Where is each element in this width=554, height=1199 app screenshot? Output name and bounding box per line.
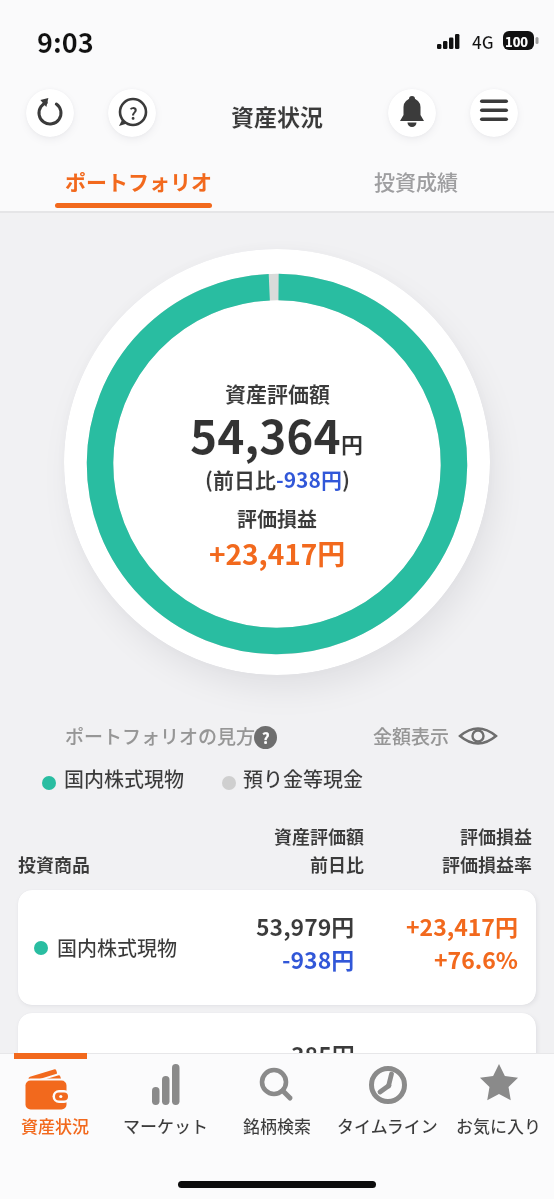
button[interactable]: タイムライン	[332, 1063, 443, 1138]
staticText: お気に入り	[456, 1113, 541, 1138]
button[interactable]: 資産状況	[0, 1063, 110, 1138]
staticText: 国内株式現物	[64, 764, 184, 793]
staticText: 金額表示	[373, 722, 450, 750]
staticText: ?	[262, 727, 270, 749]
button[interactable]	[26, 89, 74, 137]
button[interactable]: 投資成績	[277, 160, 554, 212]
staticText: 53,979円	[256, 909, 355, 942]
staticText: ポートフォリオ	[65, 166, 212, 196]
button[interactable]: マーケット	[110, 1063, 221, 1138]
staticText: 評価損益率	[442, 851, 532, 877]
button[interactable]: ポートフォリオ	[0, 160, 277, 212]
button[interactable]: 国内株式現物	[18, 890, 536, 1005]
staticText: 投資成績	[374, 166, 458, 196]
staticText: ポートフォリオの見方	[65, 722, 256, 750]
staticText: +23,417円	[209, 533, 346, 574]
staticText: 国内株式現物	[57, 933, 177, 962]
staticText: 54,364	[190, 401, 341, 468]
staticText: 預り金等現金	[243, 764, 363, 793]
staticText: 評価損益	[460, 823, 532, 849]
staticText: 銘柄検索	[243, 1113, 311, 1138]
staticText: 資産状況	[21, 1113, 89, 1138]
staticText: タイムライン	[337, 1113, 438, 1138]
button[interactable]	[470, 89, 518, 137]
staticText: 資産評価額	[274, 823, 364, 849]
staticText: 9:03	[37, 22, 94, 61]
staticText: 円	[341, 427, 364, 459]
staticText: 投資商品	[18, 851, 90, 877]
staticText: 評価損益	[237, 504, 317, 533]
staticText: (前日比-938円)	[205, 464, 350, 494]
staticText: +76.6%	[434, 942, 518, 975]
staticText: 4G	[472, 29, 494, 54]
button[interactable]: 385円	[18, 1013, 536, 1128]
staticText: マーケット	[123, 1113, 208, 1138]
button[interactable]	[108, 89, 156, 137]
staticText: -938円	[282, 942, 355, 975]
staticText: ?	[129, 100, 138, 125]
staticText: 資産状況	[231, 99, 323, 132]
staticText: 385円	[291, 1037, 355, 1070]
button[interactable]: ポートフォリオの見方	[65, 722, 256, 750]
button[interactable]: 金額表示	[373, 722, 498, 750]
staticText: 前日比	[310, 851, 364, 877]
button[interactable]: お気に入り	[443, 1063, 554, 1138]
button[interactable]: 銘柄検索	[221, 1063, 332, 1138]
staticText: +23,417円	[406, 909, 518, 942]
staticText: 100	[505, 32, 529, 51]
staticText: 資産評価額	[225, 378, 330, 408]
button[interactable]	[388, 89, 436, 137]
